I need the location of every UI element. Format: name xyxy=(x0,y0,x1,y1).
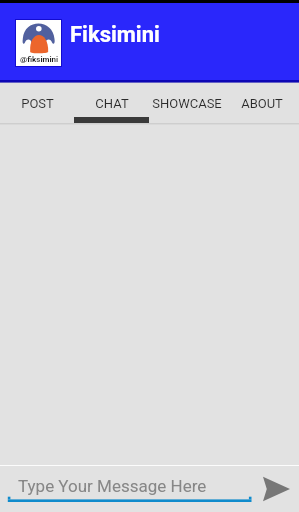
button[interactable]: CHAT xyxy=(74,83,149,123)
button[interactable]: Fiksimini logo xyxy=(16,20,61,66)
staticText: CHAT xyxy=(95,96,129,111)
staticText: Fiksimini xyxy=(70,22,160,48)
button[interactable]: ABOUT xyxy=(224,83,299,123)
staticText: @fiksimini xyxy=(20,55,59,64)
staticText: SHOWCASE xyxy=(152,96,222,111)
button[interactable]: SHOWCASE xyxy=(149,83,224,123)
staticText: ABOUT xyxy=(241,96,283,111)
button[interactable]: POST xyxy=(0,83,74,123)
staticText: Type Your Message Here xyxy=(18,476,207,496)
button[interactable]: Send xyxy=(256,466,299,512)
staticText: POST xyxy=(21,96,54,111)
button[interactable]: Type Your Message Here xyxy=(0,466,256,512)
